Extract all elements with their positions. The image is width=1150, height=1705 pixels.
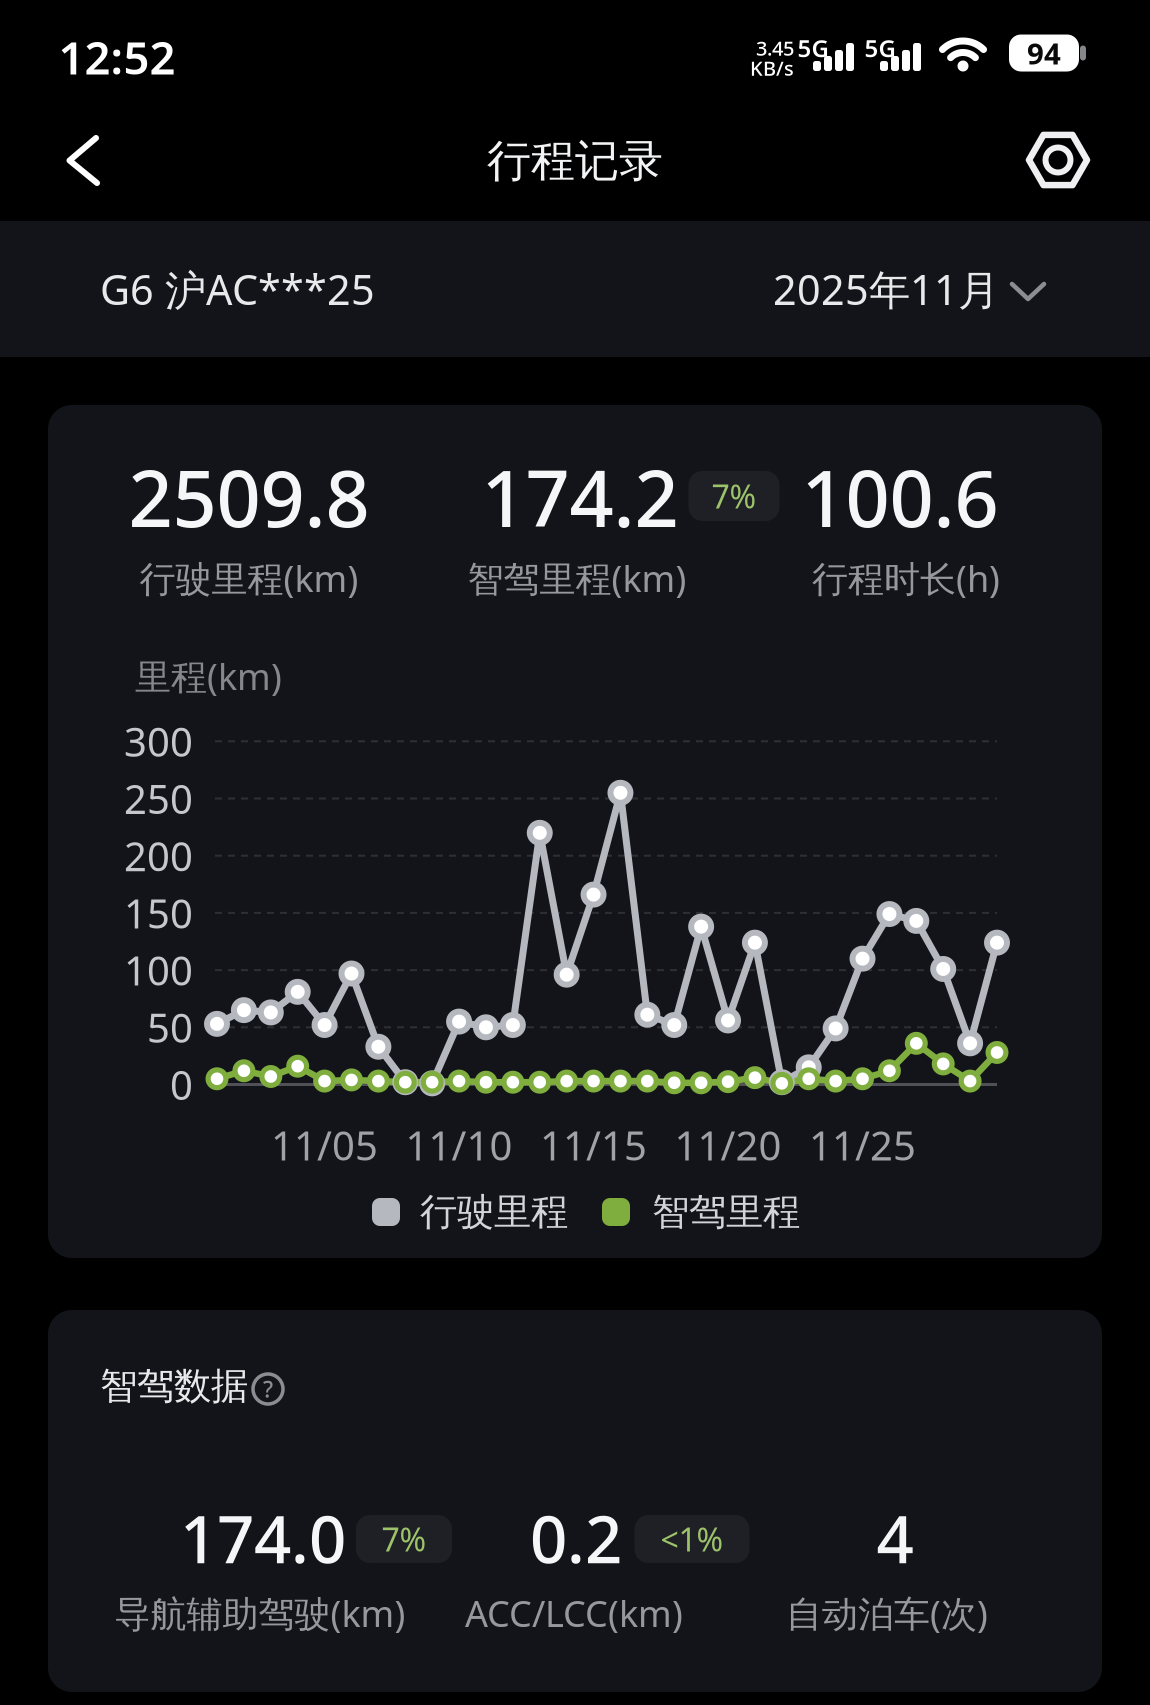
staticText: 200: [124, 829, 193, 882]
staticText: 3.45: [756, 35, 794, 61]
staticText: 自动泊车(次): [786, 1589, 988, 1637]
staticText: 里程(km): [135, 652, 282, 700]
button[interactable]: Settings: [0, 0, 86, 86]
staticText: 174.2: [481, 446, 678, 548]
staticText: 11/20: [674, 1118, 781, 1171]
staticText: 11/05: [271, 1118, 378, 1171]
staticText: 智驾里程: [652, 1189, 800, 1235]
staticText: 11/10: [406, 1118, 513, 1171]
staticText: 行驶里程: [420, 1189, 568, 1235]
staticText: 智驾数据: [100, 1363, 248, 1409]
staticText: G6 沪AC***25: [100, 261, 375, 316]
staticText: 94: [1027, 33, 1061, 72]
staticText: 4: [876, 1495, 913, 1581]
staticText: 导航辅助驾驶(km): [114, 1589, 405, 1637]
staticText: 250: [124, 772, 193, 825]
staticText: 智驾里程(km): [467, 554, 686, 602]
staticText: KB/s: [750, 55, 794, 81]
staticText: 7%: [381, 1518, 426, 1560]
staticText: 174.0: [180, 1495, 346, 1581]
staticText: 100: [124, 943, 193, 997]
staticText: 5G: [864, 32, 895, 64]
staticText: 行程记录: [487, 134, 663, 188]
staticText: 11/25: [809, 1118, 916, 1171]
staticText: 11/15: [540, 1118, 647, 1171]
staticText: ACC/LCC(km): [465, 1589, 683, 1637]
staticText: 0.2: [530, 1495, 622, 1581]
staticText: 行驶里程(km): [139, 554, 358, 602]
button[interactable]: 选择月份: [0, 0, 290, 136]
staticText: 2025年11月: [773, 262, 999, 316]
button[interactable]: G6 沪AC***25: [0, 0, 275, 136]
staticText: ?: [263, 1374, 273, 1404]
staticText: 5G: [797, 32, 828, 64]
staticText: 0: [170, 1058, 193, 1111]
staticText: <1%: [660, 1518, 723, 1560]
staticText: 150: [124, 886, 193, 939]
staticText: 100.6: [801, 446, 998, 548]
staticText: 50: [147, 1001, 193, 1054]
staticText: 12:52: [58, 27, 175, 87]
staticText: 行程时长(h): [812, 554, 1000, 602]
staticText: 2509.8: [128, 446, 369, 548]
staticText: 7%: [711, 475, 756, 517]
staticText: 300: [124, 715, 193, 768]
button[interactable]: Back: [0, 0, 90, 90]
